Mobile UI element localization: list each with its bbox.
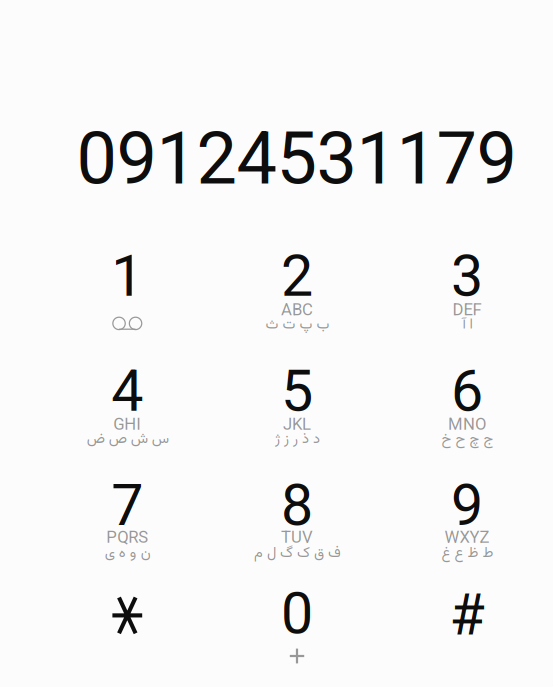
button[interactable]: Pound bbox=[382, 580, 552, 687]
staticText: ط ظ ع غ bbox=[441, 542, 493, 565]
staticText: 09124531179 bbox=[76, 117, 516, 201]
staticText: ABC bbox=[281, 300, 313, 319]
staticText: ج چ ح خ bbox=[441, 428, 493, 451]
staticText: WXYZ bbox=[444, 527, 489, 547]
staticText: 7 bbox=[111, 472, 143, 539]
button[interactable]: 4 GHI bbox=[42, 361, 212, 475]
staticText: 8 bbox=[281, 472, 313, 539]
staticText: 2 bbox=[281, 243, 313, 310]
button[interactable]: 1, voicemail bbox=[42, 246, 212, 360]
staticText: TUV bbox=[281, 527, 313, 547]
staticText: ن و ه ی bbox=[104, 542, 150, 565]
staticText: PQRS bbox=[106, 527, 148, 547]
staticText: ا آ bbox=[462, 313, 472, 336]
staticText: 9 bbox=[451, 472, 483, 539]
button[interactable]: 0, plus bbox=[212, 580, 382, 687]
staticText: 4 bbox=[111, 358, 143, 425]
button[interactable]: 3 DEF bbox=[382, 246, 552, 360]
button[interactable]: 2 ABC bbox=[212, 246, 382, 360]
staticText: ب پ ت ث bbox=[265, 313, 329, 336]
button[interactable]: 5 JKL bbox=[212, 361, 382, 475]
staticText: MNO bbox=[448, 414, 486, 434]
button[interactable]: 6 MNO bbox=[382, 361, 552, 475]
staticText: 3 bbox=[451, 243, 483, 310]
staticText: ف ق ک گ ل م bbox=[253, 542, 340, 565]
staticText: GHI bbox=[113, 414, 141, 434]
button[interactable]: 7 PQRS bbox=[42, 475, 212, 589]
button[interactable]: 9 WXYZ bbox=[382, 475, 552, 589]
staticText: 0 bbox=[281, 580, 313, 647]
staticText: د ذ ر ز ژ bbox=[274, 428, 319, 451]
staticText: JKL bbox=[283, 414, 311, 434]
staticText: 6 bbox=[451, 358, 483, 425]
staticText: DEF bbox=[452, 300, 481, 319]
button[interactable]: Star bbox=[42, 580, 212, 687]
staticText: # bbox=[449, 581, 484, 649]
button[interactable]: 8 TUV bbox=[212, 475, 382, 589]
staticText: 1 bbox=[111, 243, 143, 310]
staticText: 5 bbox=[281, 358, 313, 425]
staticText: س ش ص ض bbox=[86, 428, 168, 451]
